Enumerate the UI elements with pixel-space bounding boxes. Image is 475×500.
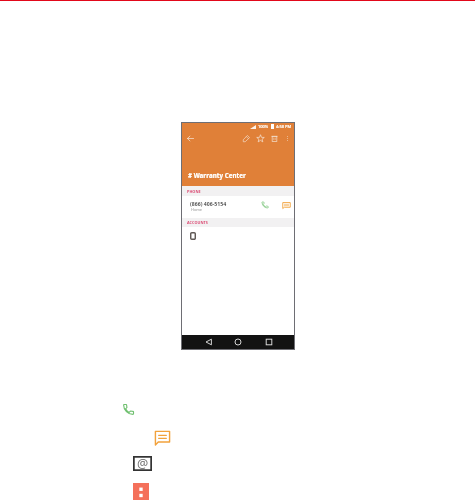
staticText: # Warranty Center (188, 171, 246, 179)
button[interactable]: Device account (190, 232, 196, 240)
button[interactable]: Delete (270, 134, 279, 143)
button[interactable]: Favorite (256, 134, 265, 143)
staticText: ACCOUNTS (187, 220, 208, 225)
button[interactable]: (866) 406-5154 (182, 196, 294, 218)
button[interactable]: Email (133, 456, 152, 471)
staticText: 4:58 PM (276, 124, 292, 129)
button[interactable]: Call (261, 201, 269, 209)
button[interactable]: Back (186, 134, 195, 143)
button[interactable]: Message (154, 430, 171, 446)
staticText: @ (137, 455, 149, 470)
staticText: 100% (258, 124, 269, 129)
button[interactable]: Home (233, 337, 243, 347)
button[interactable]: Recents (264, 337, 274, 347)
staticText: Home (191, 207, 203, 212)
button[interactable]: Back (204, 337, 214, 347)
button[interactable]: Edit (242, 134, 251, 143)
staticText: PHONE (187, 189, 201, 194)
button[interactable]: Call (122, 403, 135, 416)
staticText: (866) 406-5154 (190, 200, 227, 207)
button[interactable]: More options (283, 134, 292, 143)
button[interactable]: Message (282, 202, 291, 209)
button[interactable]: More options (133, 483, 149, 500)
